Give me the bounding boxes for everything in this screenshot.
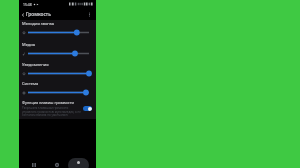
staticText: Мелодия звонка (22, 21, 55, 26)
button[interactable]: Функция клавиш громкости (22, 100, 93, 116)
button[interactable]: More options (86, 11, 93, 18)
staticText: Уведомления (22, 62, 49, 67)
button[interactable]: Медиа (22, 42, 89, 57)
button[interactable]: Back (19, 11, 26, 18)
staticText: Громкость (26, 11, 51, 18)
button[interactable]: Система (22, 81, 89, 96)
button[interactable]: Recents (30, 161, 38, 168)
staticText: Разрешить клавишам громкости управлять г… (22, 106, 83, 116)
button[interactable]: Home (53, 161, 61, 168)
staticText: Медиа (22, 42, 35, 47)
staticText: Функция клавиш громкости (22, 100, 74, 105)
button[interactable]: Toggle volume keys (83, 106, 92, 111)
staticText: 15:48 (23, 2, 32, 7)
button[interactable]: Assistant (68, 158, 89, 168)
staticText: Система (22, 81, 39, 86)
button[interactable]: Мелодия звонка (22, 21, 89, 36)
button[interactable]: Уведомления (22, 62, 89, 77)
